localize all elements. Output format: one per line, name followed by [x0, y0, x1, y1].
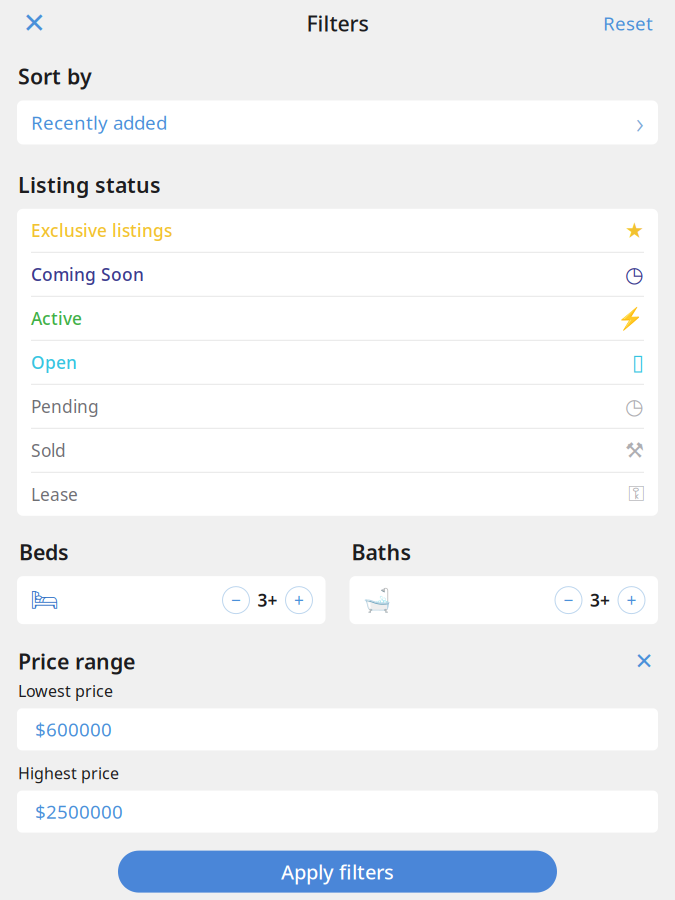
staticText: +: [626, 589, 636, 612]
button[interactable]: Decrease: [555, 587, 582, 614]
staticText: Recently added: [31, 110, 167, 135]
staticText: Beds: [19, 538, 69, 566]
staticText: Coming Soon: [31, 263, 144, 286]
staticText: ✕: [22, 7, 45, 39]
button[interactable]: Recently added: [17, 100, 658, 144]
staticText: Reset: [603, 11, 653, 35]
button[interactable]: Apply filters: [118, 851, 557, 893]
button[interactable]: Increase: [285, 587, 312, 614]
staticText: −: [231, 589, 241, 612]
button[interactable]: $2500000: [17, 791, 658, 833]
staticText: ✕: [634, 648, 653, 674]
staticText: ◷: [625, 394, 644, 418]
staticText: Listing status: [18, 170, 161, 199]
button[interactable]: Decrease: [222, 587, 249, 614]
staticText: +: [294, 589, 304, 612]
button[interactable]: Reset: [593, 1, 663, 45]
staticText: Exclusive listings: [31, 219, 172, 242]
staticText: Highest price: [18, 762, 119, 784]
button[interactable]: Open: [17, 341, 658, 384]
button[interactable]: Active: [17, 297, 658, 340]
button[interactable]: Increase: [618, 587, 645, 614]
staticText: 🛏: [30, 587, 59, 613]
button[interactable]: Clear price range: [627, 644, 661, 678]
button[interactable]: Lease: [17, 473, 658, 516]
button[interactable]: $600000: [17, 708, 658, 750]
staticText: ★: [625, 218, 644, 242]
staticText: Sold: [31, 439, 66, 462]
staticText: Lease: [31, 483, 78, 506]
staticText: Sort by: [18, 62, 92, 90]
staticText: ▯: [632, 350, 644, 374]
staticText: $600000: [35, 717, 112, 742]
staticText: $2500000: [35, 799, 123, 824]
staticText: Baths: [351, 538, 411, 566]
staticText: 3+: [590, 589, 610, 612]
button[interactable]: Exclusive listings: [17, 209, 658, 252]
staticText: Filters: [306, 9, 368, 37]
staticText: −: [563, 589, 573, 612]
button[interactable]: Coming Soon: [17, 253, 658, 296]
staticText: ◷: [625, 262, 644, 286]
button[interactable]: Sold: [17, 429, 658, 472]
staticText: Apply filters: [281, 858, 394, 885]
staticText: Price range: [18, 647, 135, 675]
staticText: Lowest price: [18, 680, 113, 701]
staticText: 3+: [257, 589, 277, 612]
staticText: Pending: [31, 395, 99, 418]
staticText: ⚡: [617, 306, 644, 330]
staticText: 🛁: [362, 587, 390, 613]
button[interactable]: Close: [12, 1, 56, 45]
staticText: ⚿: [628, 484, 644, 505]
staticText: Open: [31, 351, 77, 374]
staticText: ›: [636, 103, 644, 142]
button[interactable]: Pending: [17, 385, 658, 428]
staticText: Active: [31, 307, 82, 330]
staticText: ⚒: [625, 438, 644, 462]
